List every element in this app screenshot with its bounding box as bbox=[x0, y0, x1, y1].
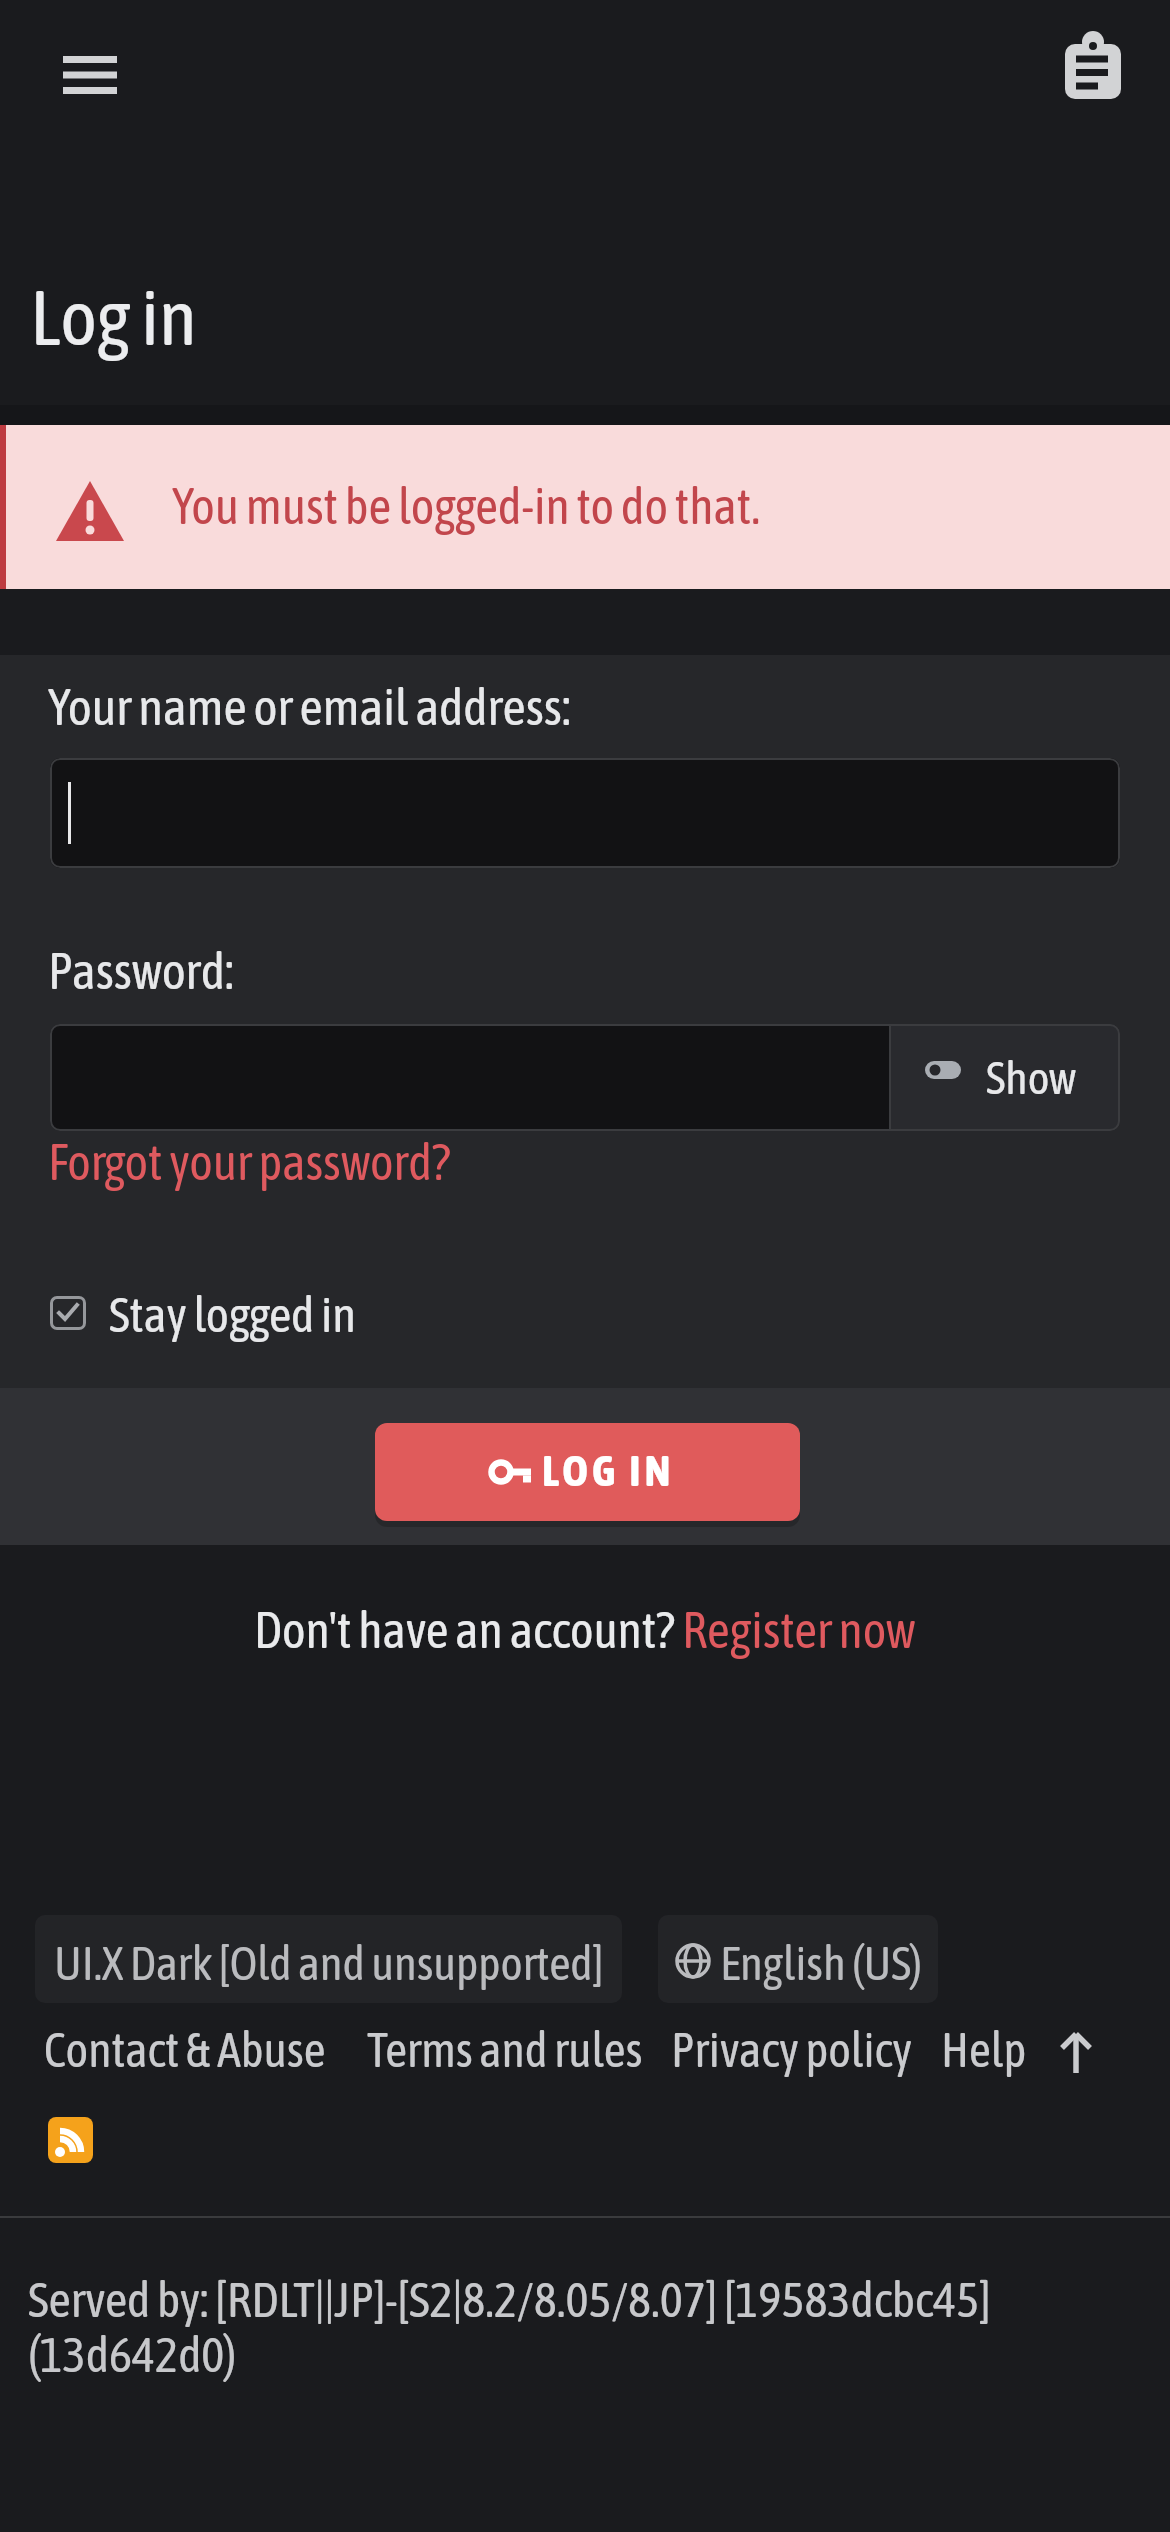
staticText: Stay logged in bbox=[109, 1286, 357, 1342]
button[interactable] bbox=[1048, 22, 1144, 112]
button[interactable]: Register now bbox=[682, 1601, 916, 1658]
staticText: (13d642d0) bbox=[28, 2326, 237, 2382]
staticText: You must be logged-in to do that. bbox=[172, 477, 761, 534]
button[interactable]: Stay logged in bbox=[36, 1282, 396, 1346]
staticText: English (US) bbox=[720, 1936, 923, 1990]
button[interactable]: Forgot your password? bbox=[0, 0, 403, 57]
staticText: Your name or email address: bbox=[48, 677, 571, 735]
staticText: Log in bbox=[30, 272, 197, 361]
staticText: Show bbox=[986, 1051, 1077, 1104]
button[interactable] bbox=[40, 2109, 101, 2171]
button[interactable]: LOG IN bbox=[375, 1423, 800, 1521]
staticText: Don't have an account? bbox=[254, 1601, 682, 1658]
staticText: UI.X Dark [Old and unsupported] bbox=[54, 1936, 604, 1990]
button[interactable] bbox=[890, 1024, 1120, 1131]
staticText: Password: bbox=[48, 941, 234, 999]
button[interactable]: UI.X Dark [Old and unsupported] bbox=[35, 1915, 622, 2003]
staticText: LOG IN bbox=[542, 1445, 675, 1495]
button[interactable] bbox=[1046, 2020, 1106, 2080]
button[interactable]: English (US) bbox=[658, 1915, 938, 2003]
button[interactable] bbox=[50, 758, 1120, 868]
staticText: Served by: [RDLT||JP]-[S2|8.2/8.05/8.07]… bbox=[28, 2271, 991, 2327]
button[interactable] bbox=[40, 33, 140, 118]
